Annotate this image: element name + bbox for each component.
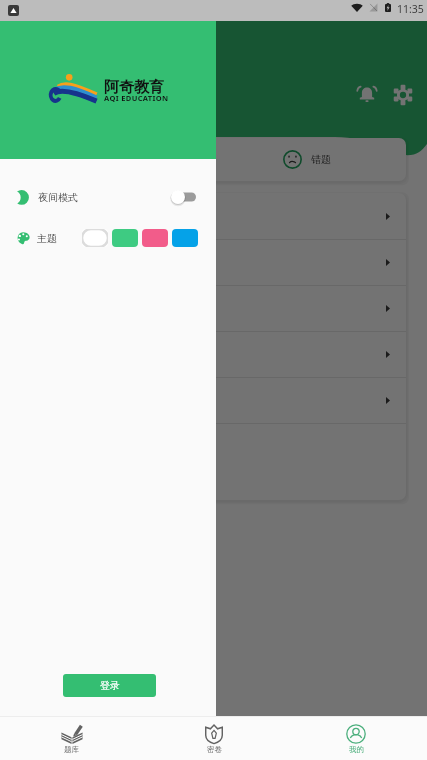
staticText: 11:35 xyxy=(397,2,424,16)
button[interactable]: 我的 xyxy=(285,717,427,760)
button[interactable]: 题库 xyxy=(0,717,143,760)
button[interactable]: 关于我们 xyxy=(22,378,406,423)
staticText: 题库 xyxy=(64,745,79,754)
staticText: 密卷 xyxy=(207,745,222,754)
button[interactable]: 登录 xyxy=(63,674,156,697)
button[interactable]: Settings xyxy=(385,77,421,113)
staticText: 我的 xyxy=(349,745,364,754)
staticText: 错题 xyxy=(311,153,331,166)
button[interactable]: 我的课程 xyxy=(22,193,406,239)
button[interactable]: Theme colour xyxy=(172,229,198,247)
button[interactable]: Night mode toggle xyxy=(171,189,196,205)
staticText: 登录 xyxy=(100,679,120,692)
button[interactable]: 密卷 xyxy=(143,717,285,760)
staticText: 阿奇教育 xyxy=(104,78,164,97)
button[interactable]: Theme colour xyxy=(112,229,138,247)
button[interactable]: Theme colour xyxy=(142,229,168,247)
button[interactable]: 错题 xyxy=(214,138,406,181)
button[interactable]: 收藏 xyxy=(22,138,214,181)
staticText: 夜间模式 xyxy=(38,191,78,204)
button[interactable]: 我的订单 xyxy=(22,240,406,285)
button[interactable]: 夜间模式 xyxy=(0,184,216,210)
button[interactable]: 意见反馈 xyxy=(22,332,406,377)
button[interactable]: Notifications xyxy=(349,77,385,113)
staticText: AQI EDUCATION xyxy=(104,93,169,103)
staticText: 主题 xyxy=(37,232,57,245)
staticText: 收藏 xyxy=(119,153,139,166)
button[interactable]: Theme colour xyxy=(82,229,108,247)
button[interactable]: 学习记录 xyxy=(22,286,406,331)
